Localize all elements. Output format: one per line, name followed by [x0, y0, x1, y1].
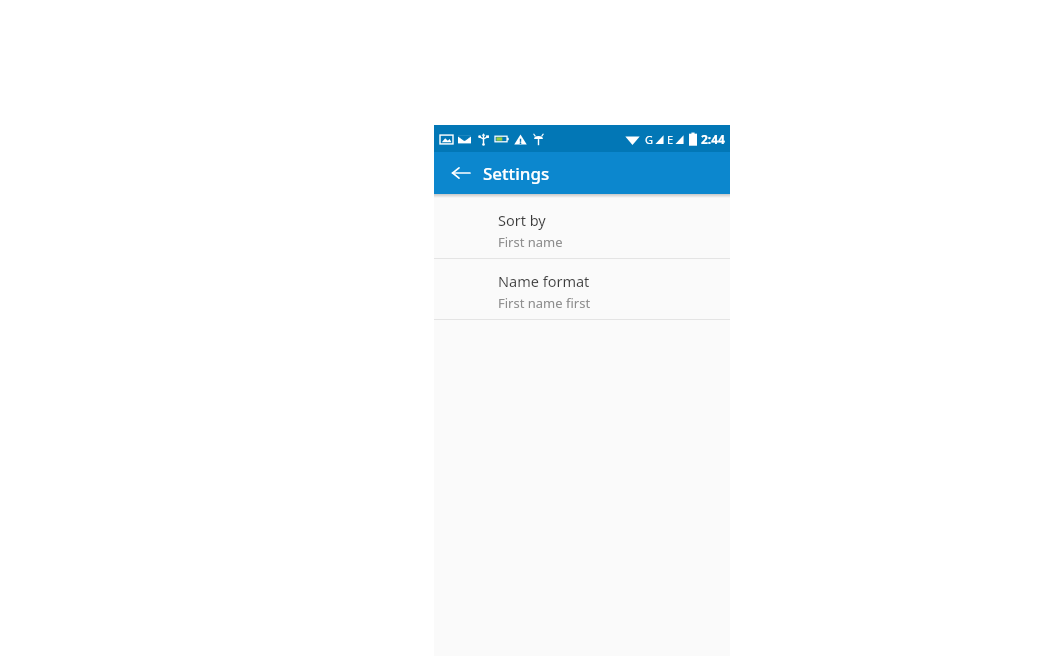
- staticText: E: [667, 132, 674, 147]
- staticText: 2:44: [701, 131, 725, 147]
- button[interactable]: Sort by: [434, 198, 730, 258]
- staticText: First name: [498, 233, 563, 251]
- button[interactable]: Back: [444, 156, 478, 190]
- button[interactable]: Name format: [434, 259, 730, 319]
- staticText: G: [645, 132, 654, 147]
- staticText: Settings: [483, 162, 550, 185]
- staticText: First name first: [498, 294, 591, 312]
- staticText: Name format: [498, 271, 590, 291]
- staticText: Sort by: [498, 210, 546, 230]
